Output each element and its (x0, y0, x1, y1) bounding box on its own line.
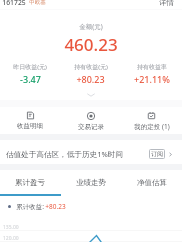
button[interactable]: Transaction records (60, 112, 121, 131)
button[interactable]: 估值处于高估区，低于历史1%时间 (0, 146, 182, 162)
staticText: 460.23 (64, 33, 118, 56)
button[interactable]: 详情 (159, 0, 174, 7)
staticText: 累计收益: (15, 202, 45, 211)
staticText: 中欧基 (29, 0, 46, 6)
staticText: 持有收益(元) (74, 63, 108, 71)
staticText: 详情 (159, 0, 174, 7)
staticText: 估值处于高估区，低于历史1%时间 (6, 149, 123, 159)
staticText: +21.11% (134, 73, 170, 85)
button[interactable]: 净值估算 (121, 174, 182, 190)
staticText: -3.47 (20, 73, 41, 85)
button[interactable]: 持有收益(元) (60, 63, 121, 85)
button[interactable]: My plans (121, 112, 182, 131)
staticText: 持有收益率 (137, 63, 167, 71)
staticText: 161725 (2, 0, 26, 7)
staticText: 120.00 (3, 235, 19, 242)
staticText: 业绩走势 (76, 178, 106, 187)
staticText: +80.23 (45, 202, 66, 211)
staticText: +80.23 (76, 73, 105, 85)
staticText: 金额(元) (79, 22, 103, 31)
staticText: 累计盈亏 (15, 178, 45, 187)
staticText: 135.00 (3, 224, 19, 231)
button[interactable]: Earnings detail (0, 112, 60, 130)
button[interactable]: 持有收益率 (121, 63, 182, 85)
button[interactable]: 业绩走势 (60, 174, 121, 190)
staticText: 收益明细 (17, 122, 43, 130)
staticText: 昨日收益(元) (13, 63, 47, 71)
button[interactable]: 昨日收益(元) (0, 63, 60, 85)
staticText: 净值估算 (137, 178, 167, 187)
staticText: 我的定投 (1) (134, 122, 170, 131)
staticText: 订阅 (151, 150, 163, 158)
staticText: 交易记录 (78, 123, 104, 131)
button[interactable]: 累计盈亏 (0, 174, 60, 190)
